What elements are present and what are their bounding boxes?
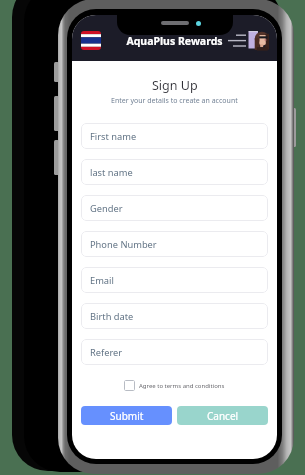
button[interactable]: last name bbox=[81, 159, 268, 185]
staticText: Agree to terms and conditions bbox=[139, 382, 225, 390]
button[interactable]: Email bbox=[81, 267, 268, 293]
staticText: Email bbox=[90, 274, 114, 287]
button[interactable]: Birth date bbox=[81, 303, 268, 329]
staticText: Cancel bbox=[207, 409, 239, 423]
staticText: Sign Up bbox=[152, 77, 198, 94]
staticText: Enter your details to create an account bbox=[111, 96, 238, 106]
button[interactable]: Menu bbox=[228, 34, 246, 47]
button[interactable]: Language: Thai bbox=[81, 31, 101, 50]
staticText: last name bbox=[90, 166, 133, 179]
button[interactable]: Gender bbox=[81, 195, 268, 221]
button[interactable]: Referer bbox=[81, 339, 268, 365]
button[interactable]: Agree to terms and conditions bbox=[124, 380, 225, 391]
button[interactable]: Profile bbox=[248, 30, 269, 51]
staticText: Referer bbox=[90, 346, 123, 359]
staticText: First name bbox=[90, 130, 137, 143]
staticText: Phone Number bbox=[90, 238, 157, 251]
staticText: Gender bbox=[90, 202, 123, 215]
staticText: AquaPlus Rewards bbox=[126, 34, 223, 47]
button[interactable]: Phone Number bbox=[81, 231, 268, 257]
button[interactable]: Submit bbox=[81, 406, 172, 425]
staticText: Birth date bbox=[90, 310, 134, 323]
button[interactable]: Cancel bbox=[177, 406, 268, 425]
button[interactable]: AquaPlus Rewards bbox=[72, 34, 277, 47]
staticText: Submit bbox=[110, 409, 144, 423]
button[interactable]: First name bbox=[81, 123, 268, 149]
